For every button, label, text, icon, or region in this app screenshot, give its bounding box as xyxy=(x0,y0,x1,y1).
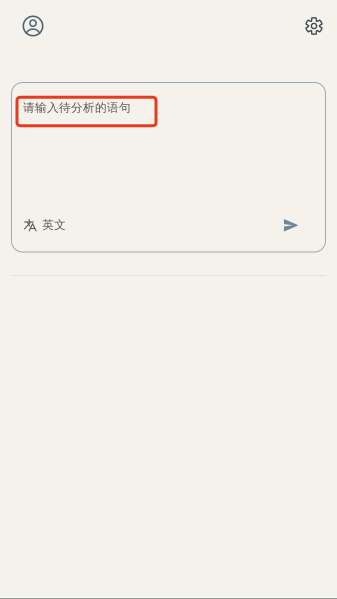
button[interactable]: Send xyxy=(278,213,304,238)
staticText: 请输入待分析的语句 xyxy=(23,100,131,115)
button[interactable]: Settings xyxy=(292,4,336,48)
staticText: 英文 xyxy=(42,218,66,232)
button[interactable]: 英文 xyxy=(19,212,71,238)
button[interactable]: Account xyxy=(11,4,55,48)
